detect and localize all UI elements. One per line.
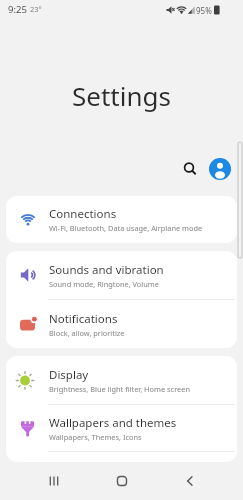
- staticText: Display: [49, 367, 89, 383]
- staticText: Wi-Fi, Bluetooth, Data usage, Airplane m…: [49, 223, 203, 233]
- button[interactable]: Sounds and vibration: [6, 251, 237, 299]
- staticText: Notifications: [49, 311, 118, 327]
- staticText: Block, allow, prioritize: [49, 328, 125, 338]
- button[interactable]: [167, 462, 213, 500]
- button[interactable]: [31, 462, 77, 500]
- button[interactable]: [209, 158, 231, 180]
- button[interactable]: Connections: [6, 196, 237, 243]
- button[interactable]: Display: [6, 356, 237, 404]
- staticText: 23°: [30, 4, 42, 14]
- staticText: Sounds and vibration: [49, 262, 164, 278]
- staticText: Settings: [72, 78, 171, 113]
- button[interactable]: [99, 462, 145, 500]
- staticText: Brightness, Blue light filter, Home scre…: [49, 384, 190, 394]
- staticText: 9:25: [8, 3, 27, 16]
- button[interactable]: Notifications: [6, 300, 237, 348]
- staticText: Connections: [49, 206, 117, 222]
- staticText: Wallpapers, Themes, Icons: [49, 432, 142, 442]
- staticText: Wallpapers and themes: [49, 415, 177, 431]
- staticText: Sound mode, Ringtone, Volume: [49, 279, 159, 289]
- staticText: 95%: [196, 5, 212, 16]
- button[interactable]: [180, 158, 200, 178]
- button[interactable]: Wallpapers and themes: [6, 405, 237, 451]
